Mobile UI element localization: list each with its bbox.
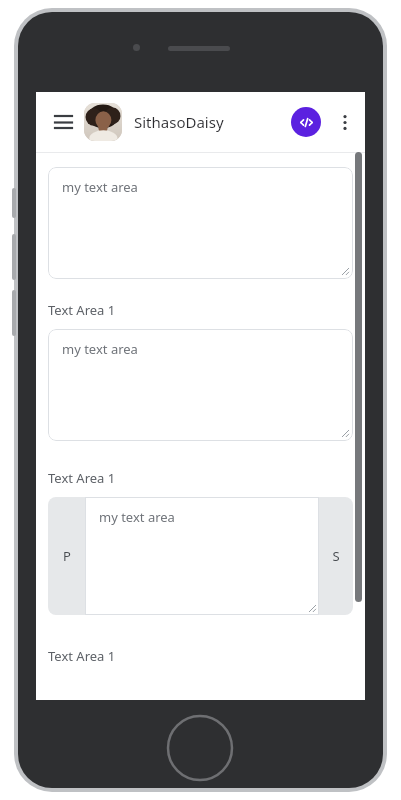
staticText: Text Area 1: [48, 647, 116, 665]
staticText: Text Area 1: [48, 301, 116, 319]
staticText: SithasoDaisy: [134, 112, 224, 132]
button[interactable]: More options: [331, 108, 359, 136]
staticText: Text Area 1: [48, 469, 116, 487]
staticText: my text area: [99, 508, 175, 526]
staticText: P: [63, 547, 71, 565]
staticText: S: [332, 547, 340, 565]
button[interactable]: View source code: [291, 107, 321, 137]
button[interactable]: Open navigation menu: [46, 105, 80, 139]
staticText: my text area: [62, 340, 138, 358]
button[interactable]: P: [48, 497, 85, 615]
button[interactable]: S: [319, 497, 353, 615]
button[interactable]: my text area: [48, 167, 353, 279]
button[interactable]: my text area: [85, 497, 319, 615]
button[interactable]: my text area: [48, 329, 353, 441]
button[interactable]: Profile picture: [84, 103, 122, 141]
staticText: my text area: [62, 178, 138, 196]
